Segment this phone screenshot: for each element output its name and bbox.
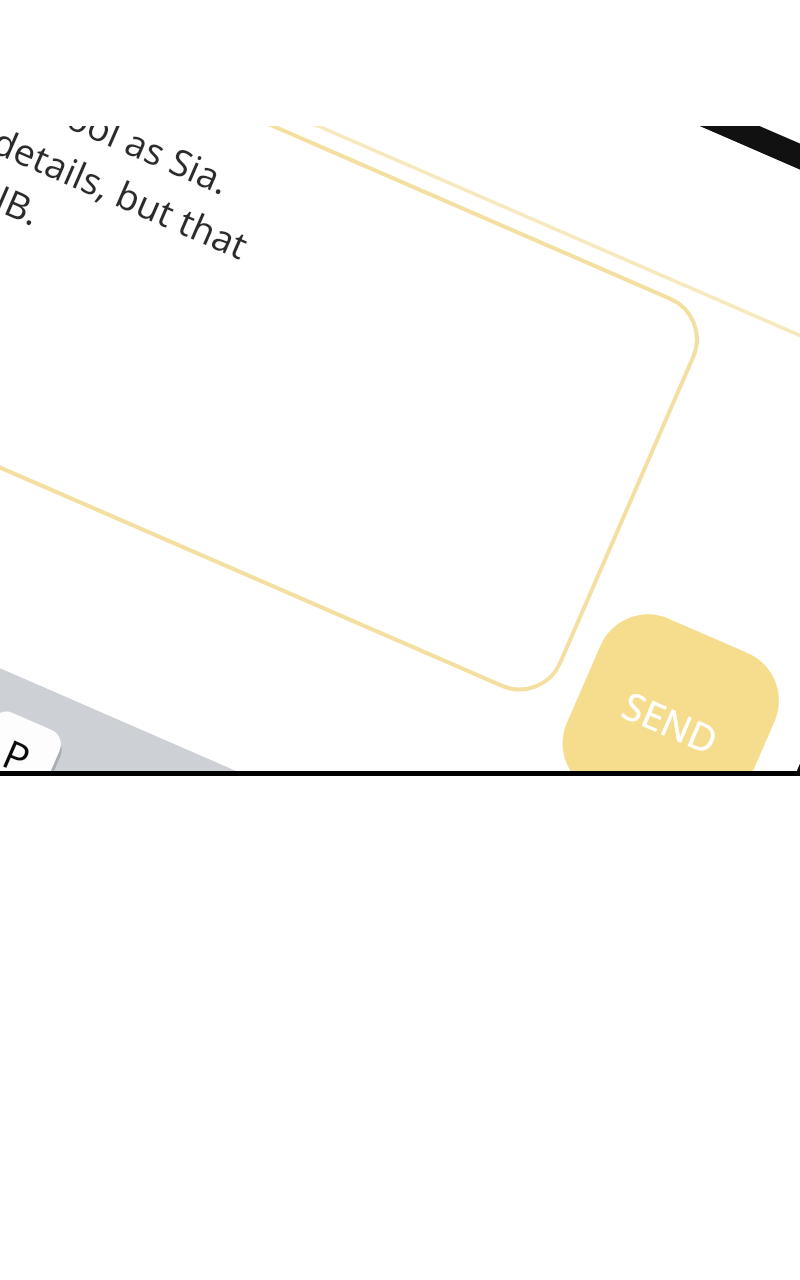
- button[interactable]: Comic panel: phone chat screen: [0, 0, 800, 1280]
